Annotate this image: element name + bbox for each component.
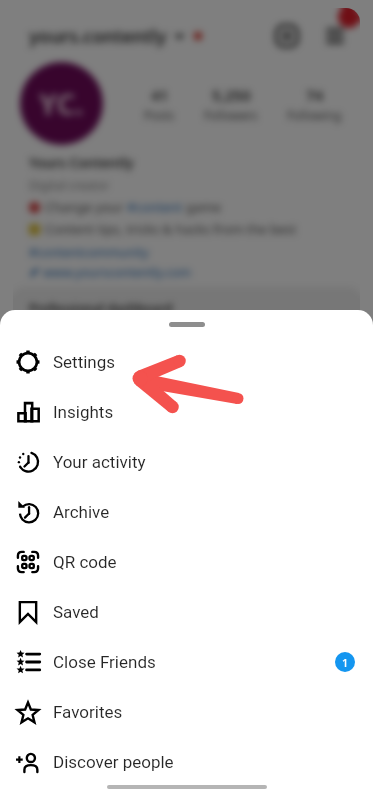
staticText: Settings bbox=[53, 352, 116, 372]
staticText: 41 bbox=[151, 85, 169, 105]
button[interactable]: Saved bbox=[0, 587, 373, 637]
staticText: Insights bbox=[53, 402, 114, 422]
staticText: 1 bbox=[342, 655, 349, 670]
staticText: #contentcommunity bbox=[29, 244, 149, 261]
staticText: Digital creator bbox=[29, 177, 110, 193]
staticText: Favorites bbox=[53, 702, 123, 722]
staticText: Content tips, tricks & hacks from the be… bbox=[45, 220, 297, 238]
staticText: Saved bbox=[53, 602, 99, 622]
button[interactable]: Discover people bbox=[0, 737, 373, 787]
button[interactable]: Close Friends bbox=[0, 637, 373, 687]
staticText: Change your bbox=[45, 198, 127, 216]
staticText: Discover people bbox=[53, 752, 174, 772]
staticText: Followers bbox=[204, 107, 258, 123]
staticText: Archive bbox=[53, 502, 110, 522]
staticText: Following bbox=[287, 107, 342, 123]
button[interactable]: Settings bbox=[0, 337, 373, 387]
button[interactable]: Insights bbox=[0, 387, 373, 437]
button[interactable]: Your activity bbox=[0, 437, 373, 487]
staticText: www.yourscontently.com bbox=[43, 264, 191, 281]
staticText: game bbox=[186, 198, 221, 216]
other: Menu bbox=[323, 24, 347, 48]
staticText: 74 bbox=[306, 85, 324, 105]
staticText: QR code bbox=[53, 552, 117, 572]
button[interactable]: Archive bbox=[0, 487, 373, 537]
staticText: Your activity bbox=[53, 452, 146, 472]
staticText: Professional dashboard bbox=[29, 300, 173, 317]
staticText: Close Friends bbox=[53, 652, 156, 672]
staticText: yours.contently bbox=[29, 24, 167, 49]
staticText: YC. bbox=[39, 84, 84, 123]
button[interactable]: Favorites bbox=[0, 687, 373, 737]
staticText: #content bbox=[127, 198, 186, 216]
staticText: Posts bbox=[144, 107, 175, 123]
button[interactable]: QR code bbox=[0, 537, 373, 587]
staticText: 5,250 bbox=[212, 85, 251, 105]
staticText: Yours Contently bbox=[29, 154, 134, 172]
other: Create bbox=[275, 24, 299, 48]
